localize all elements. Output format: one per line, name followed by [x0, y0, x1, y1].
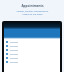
- button[interactable]: [6, 56, 58, 60]
- button[interactable]: [6, 40, 58, 44]
- staticText: Appointments: [21, 4, 44, 8]
- button[interactable]: [6, 60, 58, 64]
- button[interactable]: [6, 44, 58, 48]
- staticText: Smaller, smarter scheduling for teams on…: [16, 10, 49, 16]
- button[interactable]: [6, 48, 58, 52]
- button[interactable]: [6, 52, 58, 56]
